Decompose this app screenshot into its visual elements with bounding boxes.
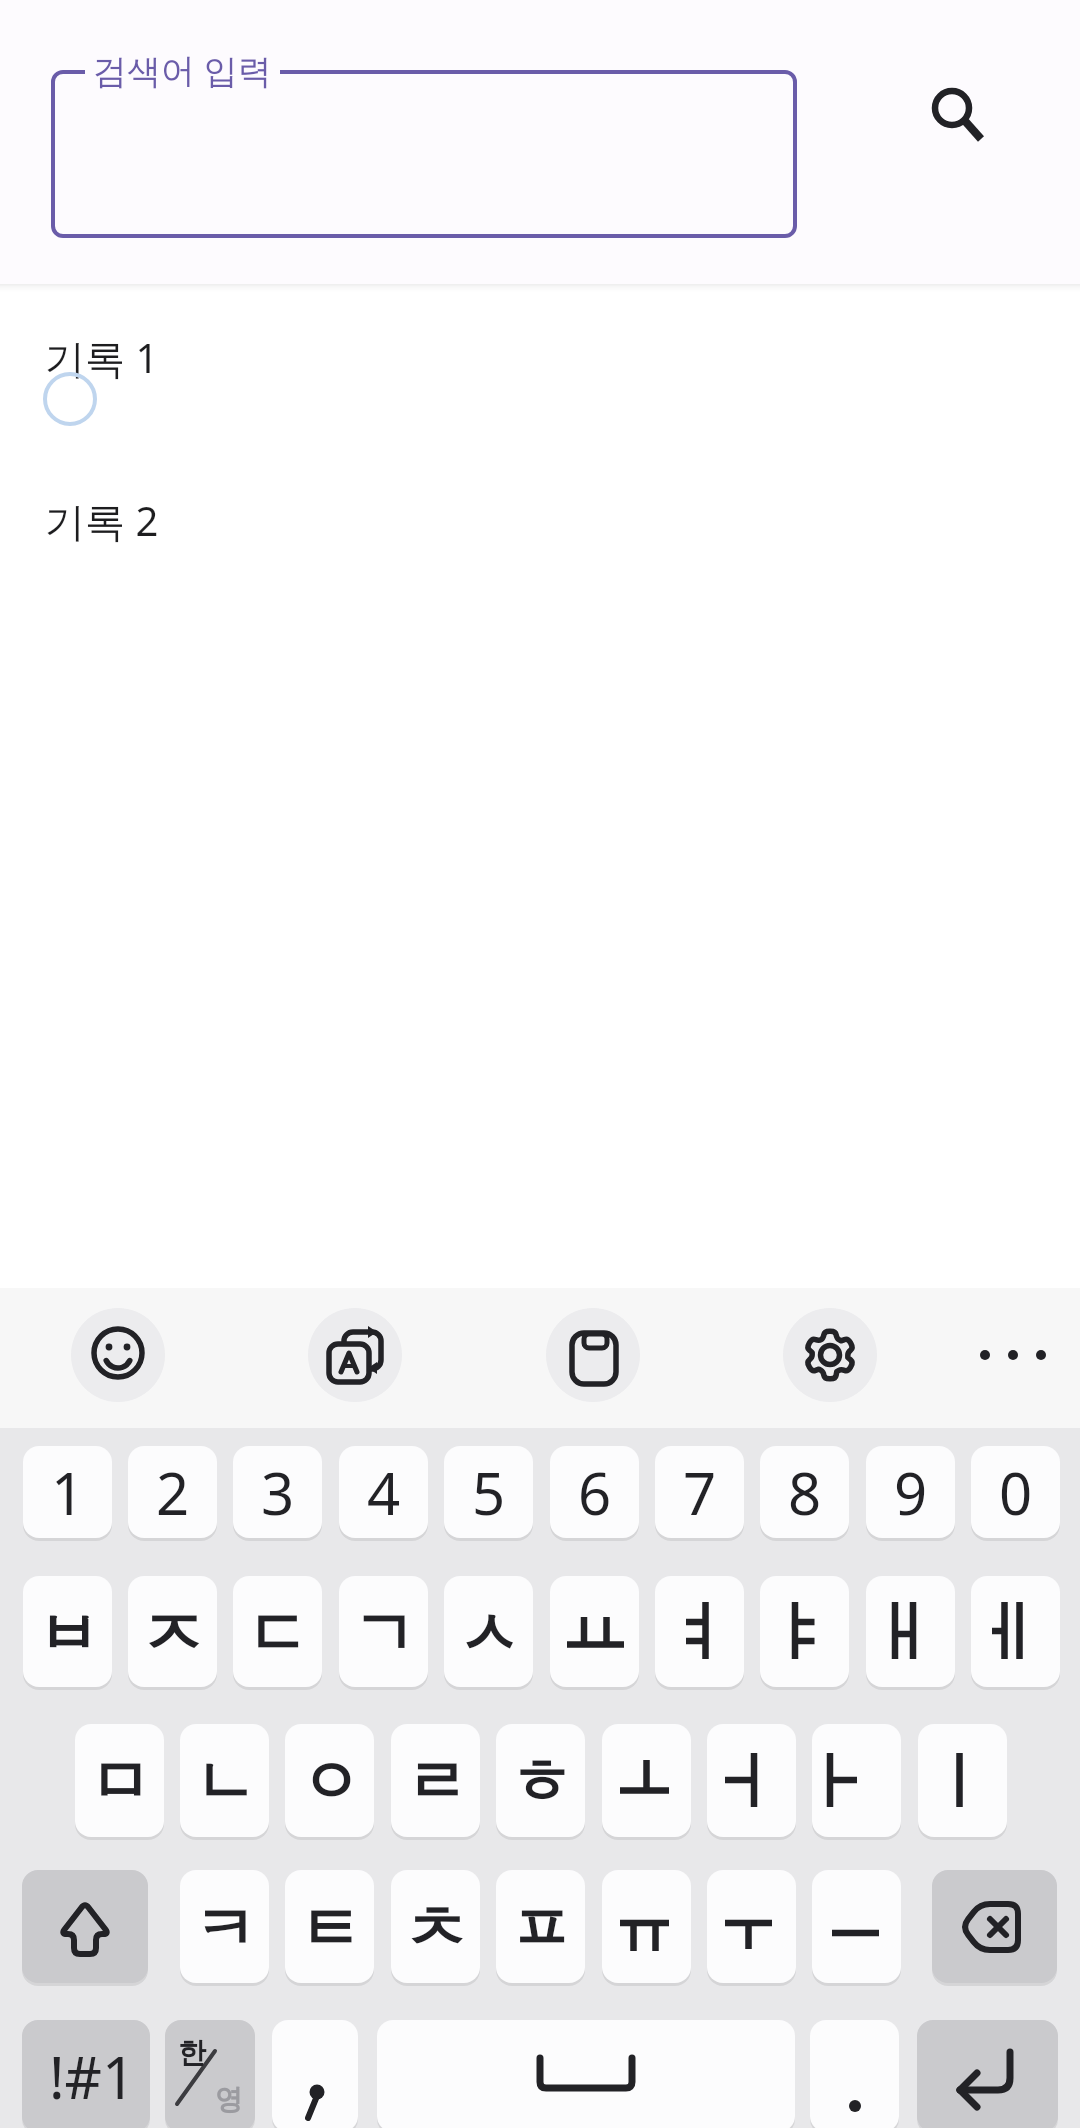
staticText: 6: [578, 1453, 612, 1532]
staticText: ㄷ: [247, 1595, 309, 1673]
staticText: 7: [683, 1453, 717, 1532]
button[interactable]: 9: [866, 1446, 955, 1538]
button[interactable]: 기록 1: [0, 316, 1080, 398]
button[interactable]: [812, 1870, 901, 1983]
staticText: !#1: [49, 2037, 136, 2116]
staticText: 2: [156, 1453, 190, 1532]
staticText: ㅂ: [37, 1595, 99, 1673]
button[interactable]: ㅎ: [496, 1724, 585, 1837]
button[interactable]: [272, 2020, 358, 2128]
button[interactable]: [602, 1724, 691, 1837]
button[interactable]: !#1: [22, 2020, 150, 2128]
button[interactable]: ㄱ: [339, 1576, 428, 1687]
staticText: ㄱ: [353, 1595, 415, 1673]
button[interactable]: [971, 1576, 1060, 1687]
staticText: ㅍ: [510, 1890, 572, 1968]
button[interactable]: [602, 1870, 691, 1983]
staticText: ㅋ: [194, 1890, 256, 1968]
staticText: 9: [894, 1453, 928, 1532]
button[interactable]: ㅍ: [496, 1870, 585, 1983]
staticText: ㅎ: [510, 1743, 572, 1821]
button[interactable]: ㅇ: [285, 1724, 374, 1837]
staticText: 3: [261, 1453, 295, 1532]
button[interactable]: 2: [128, 1446, 217, 1538]
button[interactable]: ㄴ: [180, 1724, 269, 1837]
staticText: 4: [367, 1453, 401, 1532]
button[interactable]: 한: [165, 2020, 255, 2128]
button[interactable]: [915, 71, 989, 145]
staticText: 기록 2: [45, 493, 159, 548]
button[interactable]: 1: [23, 1446, 112, 1538]
staticText: ㄹ: [405, 1743, 467, 1821]
button[interactable]: [969, 1311, 1057, 1399]
button[interactable]: [918, 1724, 1007, 1837]
button[interactable]: [377, 2020, 795, 2128]
staticText: 8: [788, 1453, 822, 1532]
staticText: ㅌ: [299, 1890, 361, 1968]
button[interactable]: 5: [444, 1446, 533, 1538]
button[interactable]: [783, 1308, 877, 1402]
button[interactable]: [22, 1870, 148, 1983]
button[interactable]: [308, 1308, 402, 1402]
button[interactable]: [550, 1576, 639, 1687]
staticText: 검색어 입력: [93, 47, 272, 93]
staticText: 5: [472, 1453, 506, 1532]
button[interactable]: 기록 2: [0, 479, 1080, 561]
staticText: ㅁ: [89, 1743, 151, 1821]
button[interactable]: [760, 1576, 849, 1687]
staticText: ㅊ: [405, 1890, 467, 1968]
button[interactable]: [917, 2020, 1058, 2128]
button[interactable]: [71, 1308, 165, 1402]
button[interactable]: [812, 1724, 901, 1837]
button[interactable]: 0: [971, 1446, 1060, 1538]
button[interactable]: ㅊ: [391, 1870, 480, 1983]
staticText: ㅈ: [142, 1595, 204, 1673]
button[interactable]: ㄹ: [391, 1724, 480, 1837]
staticText: ㅅ: [458, 1595, 520, 1673]
button[interactable]: 7: [655, 1446, 744, 1538]
button[interactable]: 6: [550, 1446, 639, 1538]
staticText: ㅇ: [299, 1743, 361, 1821]
staticText: 0: [999, 1453, 1033, 1532]
button[interactable]: [707, 1870, 796, 1983]
button[interactable]: ㅋ: [180, 1870, 269, 1983]
button[interactable]: ㅁ: [75, 1724, 164, 1837]
button[interactable]: [655, 1576, 744, 1687]
button[interactable]: [707, 1724, 796, 1837]
button[interactable]: [810, 2020, 899, 2128]
button[interactable]: [51, 70, 797, 238]
button[interactable]: ㄷ: [233, 1576, 322, 1687]
button[interactable]: 8: [760, 1446, 849, 1538]
button[interactable]: ㅈ: [128, 1576, 217, 1687]
staticText: 1: [51, 1453, 85, 1532]
button[interactable]: 3: [233, 1446, 322, 1538]
staticText: ㄴ: [194, 1743, 256, 1821]
staticText: 기록 1: [45, 330, 159, 385]
button[interactable]: ㅌ: [285, 1870, 374, 1983]
button[interactable]: 4: [339, 1446, 428, 1538]
button[interactable]: ㅅ: [444, 1576, 533, 1687]
button[interactable]: ㅂ: [23, 1576, 112, 1687]
staticText: 한: [178, 2035, 206, 2070]
button[interactable]: [932, 1870, 1057, 1983]
button[interactable]: [866, 1576, 955, 1687]
button[interactable]: [546, 1308, 640, 1402]
staticText: 영: [215, 2082, 243, 2117]
